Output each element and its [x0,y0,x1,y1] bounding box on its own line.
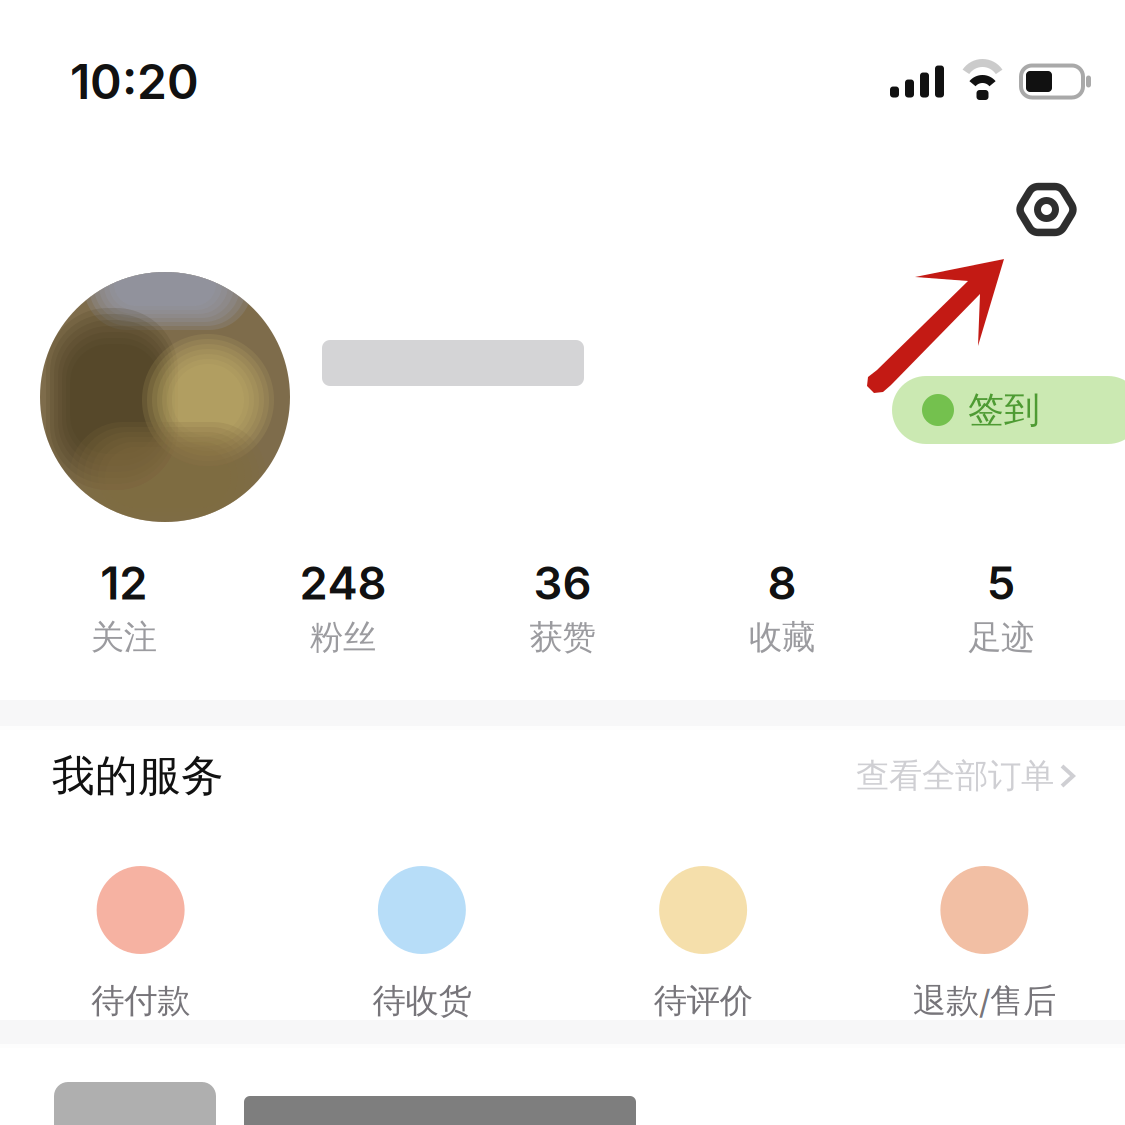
button[interactable]: 248 [233,556,453,658]
button[interactable]: 签到 [892,376,1125,444]
staticText: 粉丝 [310,616,376,658]
button[interactable]: 8 [672,556,892,658]
staticText: 10:20 [70,52,199,111]
button[interactable]: Settings [1007,172,1086,247]
button[interactable] [0,1082,1125,1125]
button[interactable]: 待评价 [562,866,844,1022]
staticText: 我的服务 [52,749,224,803]
button[interactable]: 待收货 [281,866,562,1022]
staticText: 待付款 [91,980,190,1022]
button[interactable]: 12 [14,556,233,658]
staticText: 获赞 [529,616,595,658]
button[interactable]: 5 [892,556,1111,658]
staticText: 12 [100,556,147,610]
staticText: 足迹 [968,616,1034,658]
button[interactable]: 退款/售后 [844,866,1125,1022]
button[interactable]: 36 [453,556,672,658]
staticText: 5 [987,556,1016,610]
staticText: 248 [300,556,387,610]
staticText: 36 [533,556,591,610]
staticText: 退款/售后 [913,980,1056,1022]
staticText: 关注 [91,616,157,658]
staticText: 待收货 [372,980,471,1022]
staticText: 收藏 [749,616,815,658]
staticText: 查看全部订单 [856,755,1054,797]
button[interactable]: 查看全部订单 [856,755,1073,797]
staticText: 签到 [968,387,1040,433]
button[interactable]: 待付款 [0,866,281,1022]
staticText: 待评价 [654,980,753,1022]
staticText: 8 [767,556,796,610]
